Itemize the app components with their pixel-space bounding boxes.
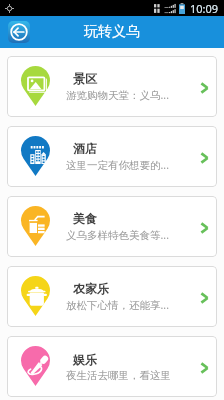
- staticText: 美食: [73, 211, 97, 226]
- staticText: 这里一定有你想要的...: [66, 158, 169, 172]
- staticText: 游览购物天堂：义乌...: [66, 88, 169, 102]
- button[interactable]: 美食: [7, 196, 217, 257]
- staticText: 农家乐: [73, 281, 109, 296]
- button[interactable]: 景区: [7, 56, 217, 117]
- staticText: 娱乐: [73, 352, 97, 367]
- staticText: 玩转义乌: [84, 23, 140, 41]
- staticText: 夜生活去哪里，看这里: [66, 369, 171, 382]
- staticText: 酒店: [73, 141, 97, 156]
- staticText: 景区: [73, 71, 97, 86]
- staticText: 10:09: [190, 1, 219, 16]
- staticText: 放松下心情，还能享...: [66, 298, 169, 312]
- button[interactable]: 酒店: [7, 126, 217, 187]
- button[interactable]: 农家乐: [7, 266, 217, 327]
- button[interactable]: 娱乐: [7, 336, 217, 397]
- button[interactable]: Back: [8, 21, 30, 43]
- staticText: 义乌多样特色美食等...: [66, 228, 169, 242]
